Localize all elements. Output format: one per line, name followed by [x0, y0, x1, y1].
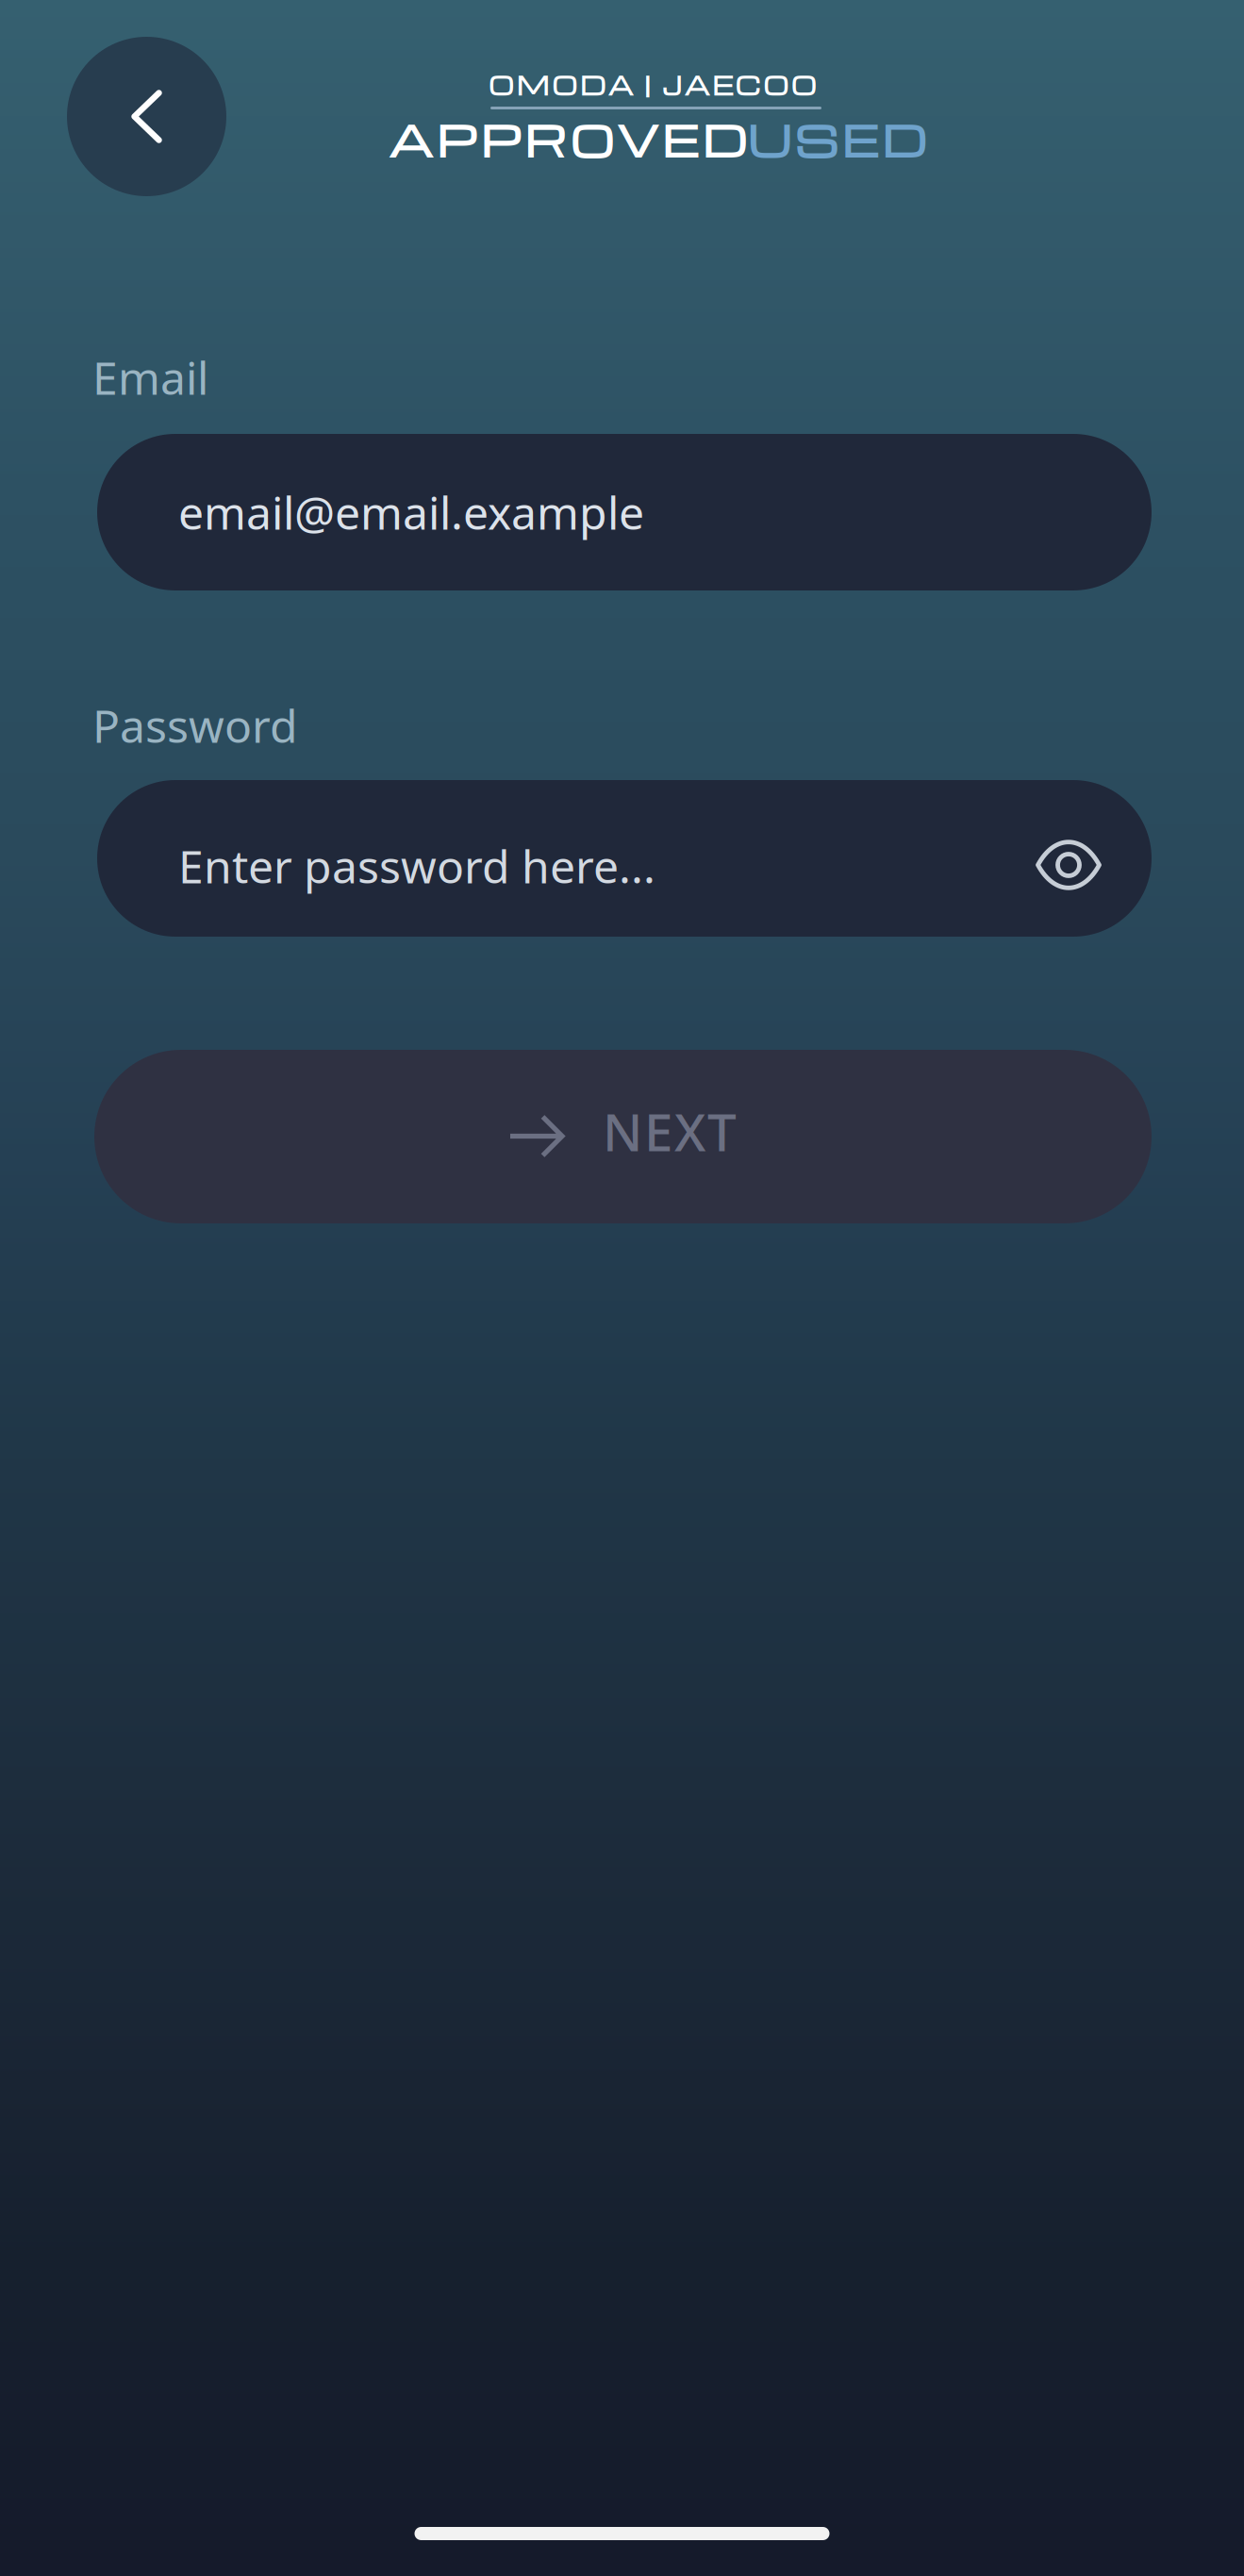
staticText: APPROVED [389, 109, 746, 168]
button[interactable]: Show password [1030, 826, 1107, 904]
staticText: NEXT [603, 1097, 737, 1165]
staticText: USED [748, 109, 926, 168]
button[interactable]: NEXT [94, 1050, 1152, 1223]
button[interactable]: Back [67, 36, 226, 197]
staticText: Email [92, 347, 208, 407]
staticText: Enter password here... [178, 836, 655, 896]
staticText: OMODA | JAECOO [489, 68, 817, 102]
staticText: Password [92, 695, 298, 755]
staticText: email@email.example [178, 482, 644, 542]
